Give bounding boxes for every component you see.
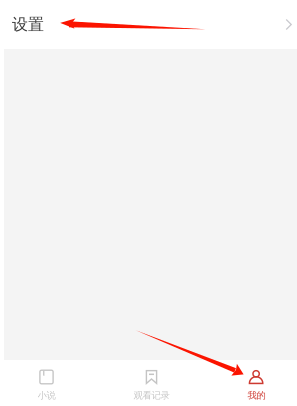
staticText: 我的 [247, 390, 265, 401]
staticText: 设置 [12, 15, 44, 34]
button[interactable]: 设置 [0, 0, 297, 49]
button[interactable]: 观看记录 [99, 359, 204, 406]
button[interactable]: 我的 [204, 359, 297, 406]
button[interactable]: 小说 [0, 359, 99, 406]
staticText: 小说 [37, 390, 55, 401]
staticText: 观看记录 [133, 390, 169, 401]
